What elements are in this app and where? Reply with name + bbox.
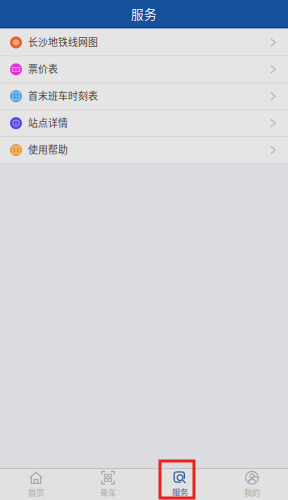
staticText: 站点详情 — [28, 115, 68, 129]
staticText: 首页 — [28, 486, 44, 498]
staticText: 服务 — [172, 486, 188, 498]
staticText: 长沙地铁线网图 — [28, 34, 98, 49]
button[interactable]: 乘车 — [72, 469, 144, 500]
staticText: 使用帮助 — [28, 142, 68, 156]
button[interactable]: 站点详情 — [0, 110, 288, 137]
button[interactable]: 长沙地铁线网图 — [0, 29, 288, 56]
staticText: 我的 — [244, 486, 260, 498]
staticText: 服务 — [131, 4, 157, 23]
button[interactable]: 首页 — [0, 469, 72, 500]
button[interactable]: 我的 — [216, 469, 288, 500]
staticText: 首末班车时刻表 — [28, 88, 98, 103]
button[interactable]: 使用帮助 — [0, 137, 288, 164]
button[interactable]: 服务 — [144, 469, 216, 500]
button[interactable]: 票价表 — [0, 56, 288, 83]
button[interactable]: 首末班车时刻表 — [0, 83, 288, 110]
staticText: 票价表 — [28, 61, 58, 76]
staticText: 乘车 — [100, 486, 116, 498]
